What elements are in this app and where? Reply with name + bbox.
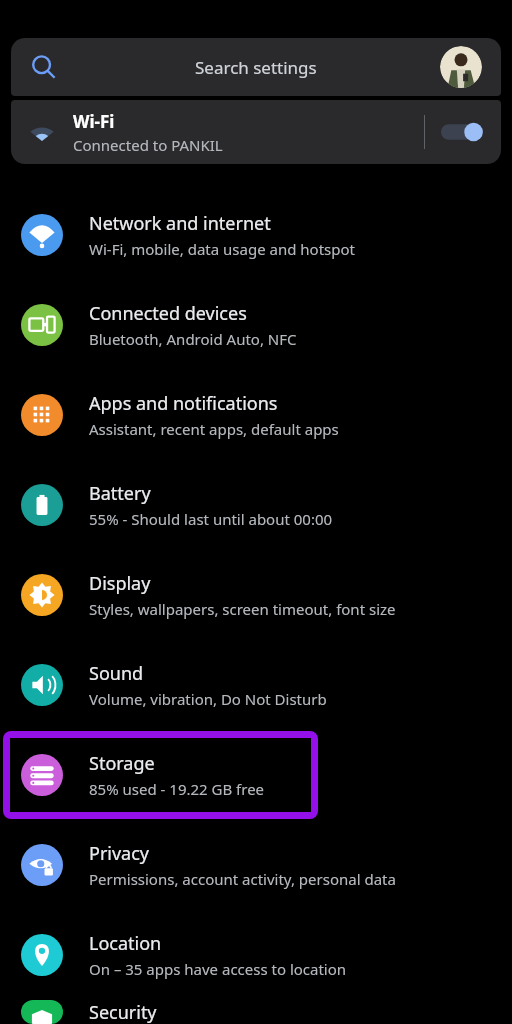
button[interactable]: Search settings <box>11 38 501 96</box>
staticText: Sound <box>89 661 144 686</box>
button[interactable]: Privacy <box>0 820 512 910</box>
staticText: Styles, wallpapers, screen timeout, font… <box>89 599 396 619</box>
staticText: Battery <box>89 481 151 506</box>
staticText: Assistant, recent apps, default apps <box>89 419 339 439</box>
button[interactable]: Battery <box>0 460 512 550</box>
staticText: Wi-Fi <box>73 110 115 133</box>
staticText: On – 35 apps have access to location <box>89 959 347 979</box>
staticText: 55% - Should last until about 00:00 <box>89 509 333 529</box>
button[interactable]: Location <box>0 910 512 1000</box>
staticText: Location <box>89 931 162 956</box>
button[interactable]: Account <box>440 46 482 88</box>
button[interactable]: Wi-Fi toggle <box>441 117 485 147</box>
staticText: 85% used - 19.22 GB free <box>89 779 265 799</box>
button[interactable]: Sound <box>0 640 512 730</box>
button[interactable]: Network and internet <box>0 190 512 280</box>
staticText: Storage <box>89 751 155 776</box>
staticText: Network and internet <box>89 211 271 236</box>
staticText: Bluetooth, Android Auto, NFC <box>89 329 297 349</box>
staticText: Volume, vibration, Do Not Disturb <box>89 689 327 709</box>
button[interactable]: Display <box>0 550 512 640</box>
staticText: Apps and notifications <box>89 391 278 416</box>
staticText: Privacy <box>89 841 150 866</box>
staticText: Connected to PANKIL <box>73 135 223 155</box>
staticText: Display <box>89 571 151 596</box>
button[interactable]: Apps and notifications <box>0 370 512 460</box>
button[interactable]: Storage <box>0 730 512 820</box>
staticText: Search settings <box>195 56 317 79</box>
staticText: Permissions, account activity, personal … <box>89 869 396 889</box>
button[interactable]: Wi-Fi <box>11 100 501 164</box>
staticText: Wi-Fi, mobile, data usage and hotspot <box>89 239 355 259</box>
button[interactable]: Connected devices <box>0 280 512 370</box>
staticText: Security <box>89 1000 157 1024</box>
button[interactable]: Security <box>0 1000 512 1024</box>
staticText: Connected devices <box>89 301 247 326</box>
